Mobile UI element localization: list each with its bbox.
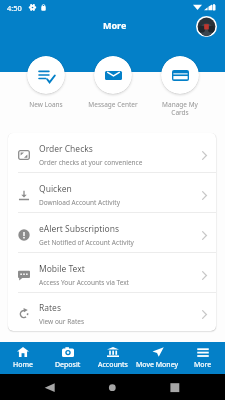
button[interactable]: Mobile Text: [8, 253, 216, 293]
button[interactable]: Manage My Cards: [147, 56, 213, 116]
staticText: View our Rates: [39, 317, 85, 326]
button[interactable]: Quicken: [8, 173, 216, 213]
staticText: Access Your Accounts via Text: [39, 278, 129, 287]
button[interactable]: eAlert Subscriptions: [8, 213, 216, 253]
button[interactable]: Home: [0, 342, 45, 374]
staticText: New Loans: [13, 100, 79, 109]
staticText: Download Account Activity: [39, 198, 120, 207]
staticText: Rates: [39, 302, 61, 314]
button[interactable]: New Loans: [13, 56, 79, 116]
button[interactable]: Deposit: [45, 342, 90, 374]
button[interactable]: Rates: [8, 293, 216, 331]
button[interactable]: Message Center: [80, 56, 146, 116]
button[interactable]: Profile: [196, 16, 217, 37]
staticText: Home: [13, 360, 33, 370]
button[interactable]: More: [180, 342, 225, 374]
staticText: Deposit: [55, 360, 81, 370]
staticText: eAlert Subscriptions: [39, 223, 119, 235]
staticText: Order Checks: [39, 143, 93, 155]
staticText: Accounts: [98, 360, 128, 370]
staticText: Get Notified of Account Activity: [39, 238, 134, 247]
button[interactable]: Move Money: [135, 342, 180, 374]
staticText: 4:50: [7, 3, 22, 13]
button[interactable]: Order Checks: [8, 133, 216, 173]
staticText: Move Money: [136, 360, 179, 370]
staticText: More: [103, 19, 127, 31]
staticText: Quicken: [39, 183, 72, 195]
staticText: More: [194, 360, 212, 370]
staticText: Order checks at your convenience: [39, 158, 143, 167]
staticText: Mobile Text: [39, 263, 85, 275]
staticText: Manage My Cards: [147, 100, 213, 117]
button[interactable]: Accounts: [90, 342, 135, 374]
staticText: Message Center: [80, 100, 146, 109]
